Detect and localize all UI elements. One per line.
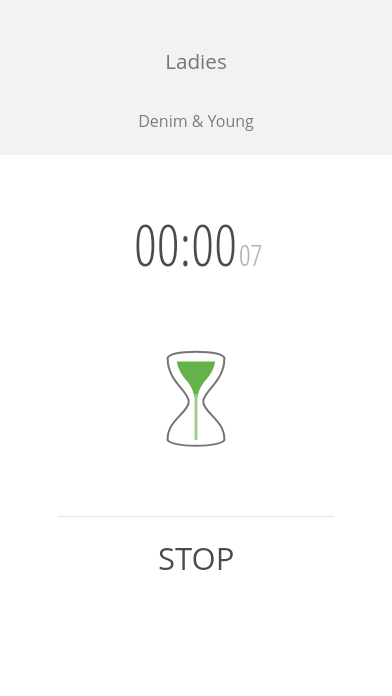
staticText: 00:00 bbox=[134, 205, 237, 283]
staticText: 07 bbox=[239, 235, 263, 274]
staticText: STOP bbox=[158, 537, 235, 579]
staticText: Denim & Young bbox=[138, 110, 254, 132]
staticText: Ladies bbox=[165, 47, 227, 75]
button[interactable]: STOP bbox=[0, 525, 392, 591]
